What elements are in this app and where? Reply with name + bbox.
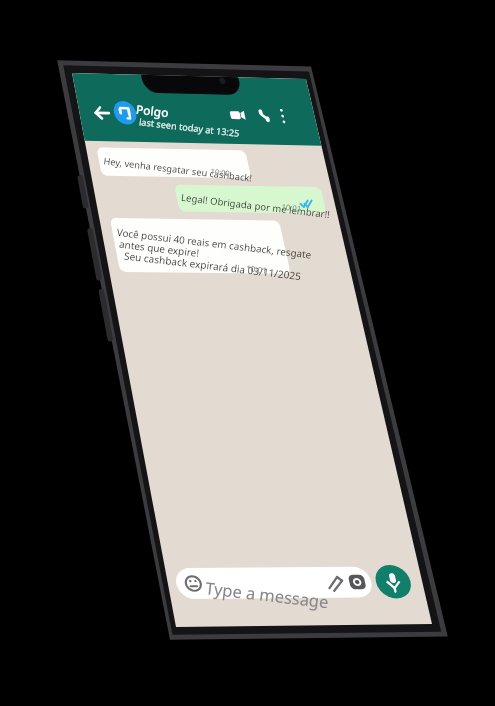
button[interactable] [192,585,377,621]
button[interactable]: Attach [338,586,360,608]
button[interactable]: Back [72,88,100,116]
button[interactable]: Camera [364,585,388,609]
button[interactable]: Profile photo [88,85,124,121]
button[interactable]: Voice call [258,94,286,122]
button[interactable]: Record voice message [393,578,433,618]
button[interactable]: Emoji [196,591,218,613]
button[interactable]: Video call [228,92,256,120]
button[interactable] [125,85,220,121]
